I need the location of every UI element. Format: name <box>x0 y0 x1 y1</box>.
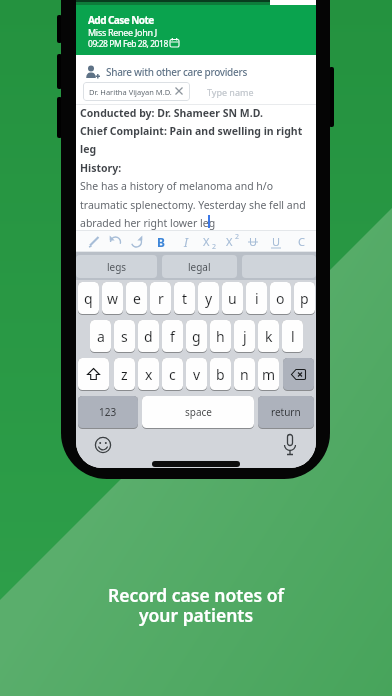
staticText: U <box>272 234 281 249</box>
staticText: Miss Renee John J <box>88 26 157 38</box>
staticText: l <box>291 327 295 346</box>
button[interactable]: j <box>234 320 255 353</box>
staticText: legal <box>188 260 211 274</box>
staticText: return <box>271 405 301 419</box>
button[interactable]: u <box>222 282 243 315</box>
button[interactable] <box>78 358 109 391</box>
button[interactable]: c <box>162 358 183 391</box>
staticText: She has a history of melanoma and h/o <box>80 179 274 193</box>
button[interactable]: legs <box>76 255 157 278</box>
button[interactable]: m <box>258 358 279 391</box>
staticText: s <box>121 327 128 346</box>
button[interactable]: s <box>114 320 135 353</box>
button[interactable]: y <box>198 282 219 315</box>
staticText: z <box>121 365 128 384</box>
button[interactable]: t <box>174 282 195 315</box>
button[interactable] <box>94 436 112 454</box>
staticText: h <box>216 327 225 346</box>
staticText: Share with other care providers <box>106 65 247 79</box>
staticText: g <box>192 327 201 346</box>
staticText: space <box>185 405 212 419</box>
staticText: traumatic splenectomy. Yesterday she fel… <box>80 198 306 212</box>
staticText: y <box>205 289 213 308</box>
staticText: U <box>249 234 258 249</box>
staticText: Type name <box>207 86 254 98</box>
staticText: legs <box>107 260 127 274</box>
button[interactable]: g <box>186 320 207 353</box>
staticText: o <box>276 289 285 308</box>
staticText: leg <box>80 142 97 156</box>
button[interactable]: o <box>270 282 291 315</box>
button[interactable]: x <box>138 358 159 391</box>
staticText: 2 <box>212 242 217 252</box>
staticText: abraded her right lower leg <box>80 216 216 230</box>
staticText: n <box>240 365 249 384</box>
button[interactable]: h <box>210 320 231 353</box>
button[interactable]: p <box>294 282 315 315</box>
button[interactable]: Dr. Haritha Vijayan M.D. <box>83 82 190 101</box>
button[interactable]: b <box>210 358 231 391</box>
staticText: i <box>255 289 259 308</box>
button[interactable]: r <box>150 282 171 315</box>
staticText: u <box>228 289 237 308</box>
staticText: x <box>145 365 153 384</box>
button[interactable]: i <box>246 282 267 315</box>
button[interactable]: a <box>90 320 111 353</box>
button[interactable]: e <box>126 282 147 315</box>
staticText: Dr. Haritha Vijayan M.D. <box>89 87 172 97</box>
staticText: Chief Complaint: Pain and swelling in ri… <box>80 124 303 138</box>
button[interactable]: return <box>258 396 314 429</box>
staticText: a <box>97 327 105 346</box>
button[interactable]: n <box>234 358 255 391</box>
button[interactable]: space <box>142 396 254 429</box>
staticText: v <box>193 365 201 384</box>
button[interactable]: q <box>78 282 99 315</box>
staticText: k <box>265 327 273 346</box>
button[interactable]: v <box>186 358 207 391</box>
staticText: X <box>203 234 210 249</box>
button[interactable]: z <box>114 358 135 391</box>
staticText: e <box>133 289 141 308</box>
staticText: b <box>216 365 225 384</box>
staticText: C <box>298 234 305 249</box>
button[interactable]: legal <box>162 255 237 278</box>
staticText: t <box>182 289 188 308</box>
button[interactable]: Share with other care providers <box>82 62 310 82</box>
button[interactable] <box>283 434 297 456</box>
button[interactable]: l <box>282 320 303 353</box>
staticText: 2 <box>235 232 240 242</box>
staticText: j <box>243 327 247 346</box>
button[interactable]: d <box>138 320 159 353</box>
staticText: 09:28 PM Feb 28, 2018 <box>88 38 168 50</box>
staticText: q <box>84 289 93 308</box>
staticText: Add Case Note <box>88 13 154 27</box>
staticText: f <box>170 327 175 346</box>
button[interactable]: k <box>258 320 279 353</box>
staticText: Conducted by: Dr. Shameer SN M.D. <box>80 106 263 120</box>
staticText: c <box>169 365 176 384</box>
button[interactable] <box>283 358 314 391</box>
staticText: 123 <box>99 405 117 419</box>
button[interactable]: w <box>102 282 123 315</box>
staticText: I <box>184 234 188 250</box>
staticText: p <box>300 289 309 308</box>
button[interactable]: f <box>162 320 183 353</box>
staticText: w <box>107 289 119 308</box>
staticText: d <box>144 327 153 346</box>
staticText: Record case notes of your patients <box>0 583 392 627</box>
button[interactable]: 123 <box>78 396 138 429</box>
staticText: r <box>158 289 164 308</box>
staticText: X <box>226 234 233 249</box>
staticText: B <box>157 234 165 250</box>
staticText: m <box>262 365 276 384</box>
staticText: History: <box>80 161 122 175</box>
